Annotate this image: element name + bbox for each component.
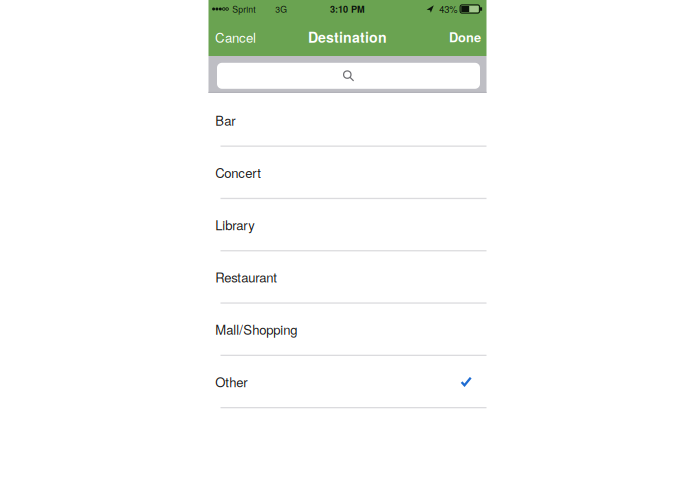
staticText: Restaurant: [215, 267, 277, 286]
button[interactable]: Search: [217, 63, 480, 89]
button[interactable]: Other: [208, 356, 486, 408]
staticText: Done: [449, 28, 481, 46]
staticText: 43%: [439, 2, 457, 16]
button[interactable]: Restaurant: [208, 251, 486, 304]
staticText: Sprint: [232, 3, 255, 15]
staticText: Concert: [215, 163, 261, 182]
button[interactable]: Mall/Shopping: [208, 304, 486, 356]
staticText: Mall/Shopping: [215, 320, 297, 338]
staticText: 3G: [275, 3, 287, 15]
staticText: Destination: [308, 27, 387, 47]
button[interactable]: Library: [208, 199, 486, 251]
staticText: Bar: [215, 111, 235, 129]
button[interactable]: Bar: [208, 94, 486, 147]
button[interactable]: Cancel: [208, 27, 256, 46]
staticText: Cancel: [215, 27, 256, 46]
button[interactable]: Concert: [208, 147, 486, 199]
button[interactable]: Done: [449, 28, 486, 46]
staticText: 3:10 PM: [330, 2, 365, 16]
staticText: Other: [215, 372, 247, 391]
staticText: Library: [215, 215, 255, 234]
